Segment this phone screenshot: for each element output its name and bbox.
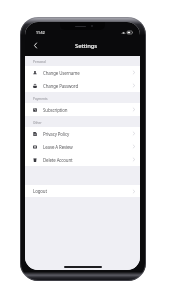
staticText: Change Password [43,83,79,89]
button[interactable]: Logout [25,185,140,197]
button[interactable]: Change Password [25,79,140,92]
staticText: Privacy Policy [43,131,70,137]
staticText: Delete Account [43,157,73,163]
staticText: 11:52 [36,30,45,35]
staticText: Personal [33,60,46,64]
staticText: Subscription [43,107,68,113]
button[interactable]: Change Username [25,66,140,79]
staticText: Leave A Review [43,144,73,150]
staticText: Logout [33,188,47,194]
button[interactable]: Delete Account [25,153,140,166]
button[interactable]: Leave A Review [25,140,140,153]
staticText: Other [33,121,42,125]
staticText: Settings [75,42,98,50]
button[interactable]: Subscription [25,103,140,116]
staticText: Payments [33,97,48,101]
button[interactable]: Privacy Policy [25,127,140,140]
staticText: Change Username [43,70,80,76]
button[interactable]: Back [30,40,41,51]
